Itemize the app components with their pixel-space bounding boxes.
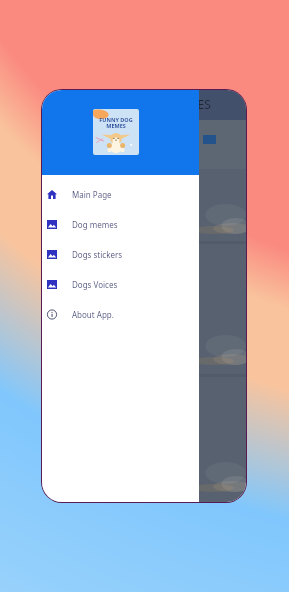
staticText: FUNNY DOG MEMES <box>96 96 211 112</box>
button[interactable]: About App. <box>42 299 199 329</box>
staticText: About App. <box>72 309 114 320</box>
staticText: Dog memes <box>72 219 118 230</box>
staticText: FUNNY DOG MEMES <box>93 116 139 129</box>
button[interactable]: Dogs Voices <box>42 269 199 299</box>
staticText: Dogs Voices <box>72 279 118 290</box>
button[interactable]: Dog memes <box>42 209 199 239</box>
staticText: Main Page <box>72 189 112 200</box>
staticText: Dogs stickers <box>72 249 123 260</box>
button[interactable]: Dogs stickers <box>42 239 199 269</box>
button[interactable]: Main Page <box>42 179 199 209</box>
